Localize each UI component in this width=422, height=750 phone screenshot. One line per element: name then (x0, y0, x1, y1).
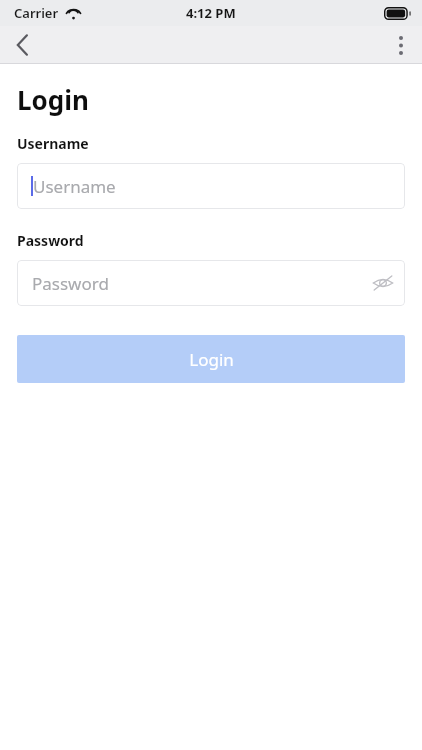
button[interactable]: More options (380, 26, 422, 64)
staticText: Password (17, 231, 84, 250)
staticText: 4:12 PM (186, 4, 236, 22)
button[interactable]: Username (17, 163, 405, 209)
staticText: Login (17, 82, 89, 117)
button[interactable]: Back (0, 26, 44, 64)
button[interactable]: Password (17, 260, 405, 306)
button[interactable]: Login (17, 335, 405, 383)
staticText: Login (189, 348, 234, 371)
staticText: Password (32, 272, 109, 295)
staticText: Username (17, 134, 89, 153)
staticText: Username (33, 175, 116, 198)
staticText: Carrier (14, 4, 59, 22)
button[interactable]: Show password (361, 260, 405, 306)
